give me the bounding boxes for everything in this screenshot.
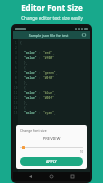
staticText: 5 <box>15 61 17 65</box>
staticText: 10 <box>20 150 83 154</box>
staticText: "value" <box>24 56 37 60</box>
staticText: "#00f" <box>43 96 54 100</box>
button[interactable]: Font size slider <box>20 145 83 150</box>
staticText: 15 <box>14 111 18 115</box>
staticText: "#f00" <box>43 56 54 60</box>
button[interactable]: Format code <box>81 32 87 38</box>
button[interactable]: Back <box>27 173 34 180</box>
staticText: 4 <box>15 56 17 60</box>
staticText: 2 <box>15 46 17 50</box>
staticText: , <box>54 111 56 115</box>
staticText: 1 <box>15 41 17 45</box>
staticText: Editor Font Size <box>21 2 83 13</box>
staticText: "cyan" <box>43 111 54 115</box>
staticText: 3 <box>15 51 17 55</box>
staticText: "color" <box>24 111 37 115</box>
button[interactable]: Home <box>48 173 55 180</box>
staticText: 7 <box>15 71 17 75</box>
staticText: Change font size <box>20 128 47 133</box>
staticText: { <box>24 86 26 90</box>
staticText: }, <box>24 61 28 65</box>
staticText: "color" <box>24 71 37 75</box>
button[interactable]: Recents <box>69 173 76 180</box>
staticText: "red" <box>43 51 53 55</box>
staticText: , <box>56 71 58 75</box>
staticText: , <box>54 91 56 95</box>
staticText: 12 <box>14 96 18 100</box>
staticText: Sample json file for test <box>16 33 81 38</box>
staticText: 11 <box>14 91 18 95</box>
staticText: "color" <box>24 91 37 95</box>
staticText: 13 <box>14 101 18 105</box>
button[interactable]: APPLY <box>20 157 83 166</box>
staticText: }, <box>24 81 28 85</box>
button[interactable]: Sample json file for test <box>13 31 90 39</box>
staticText: Change editor text size easily <box>21 15 83 21</box>
staticText: 9 <box>15 81 17 85</box>
staticText: { <box>24 66 26 70</box>
staticText: "value" <box>24 96 37 100</box>
staticText: "#0f0" <box>43 76 54 80</box>
staticText: 6 <box>15 66 17 70</box>
staticText: APPLY <box>46 159 57 164</box>
staticText: "green" <box>43 71 56 75</box>
staticText: "color" <box>24 51 37 55</box>
staticText: { <box>24 106 26 110</box>
staticText: "blue" <box>43 91 54 95</box>
staticText: PREVIEW <box>20 136 83 142</box>
staticText: "value" <box>24 76 37 80</box>
staticText: { <box>20 41 22 45</box>
staticText: }, <box>24 101 28 105</box>
staticText: 14 <box>14 106 18 110</box>
staticText: 10 <box>14 86 18 90</box>
staticText: 8 <box>15 76 17 80</box>
staticText: , <box>53 51 55 55</box>
